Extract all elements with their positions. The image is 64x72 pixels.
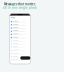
- button[interactable]: [9, 42, 30, 46]
- button[interactable]: [9, 23, 30, 26]
- button[interactable]: [9, 52, 30, 55]
- staticText: all in one single place: [3, 6, 37, 9]
- button[interactable]: [9, 46, 30, 49]
- button[interactable]: [9, 58, 30, 62]
- button[interactable]: [9, 20, 30, 23]
- button[interactable]: [9, 30, 30, 33]
- button[interactable]: [9, 33, 30, 36]
- button[interactable]: [9, 26, 30, 30]
- button[interactable]: [9, 39, 30, 42]
- button[interactable]: [9, 55, 30, 58]
- button[interactable]: [9, 36, 30, 39]
- staticText: Messages that matter,: [4, 2, 36, 6]
- button[interactable]: Compose: [20, 56, 30, 60]
- button[interactable]: [9, 49, 30, 52]
